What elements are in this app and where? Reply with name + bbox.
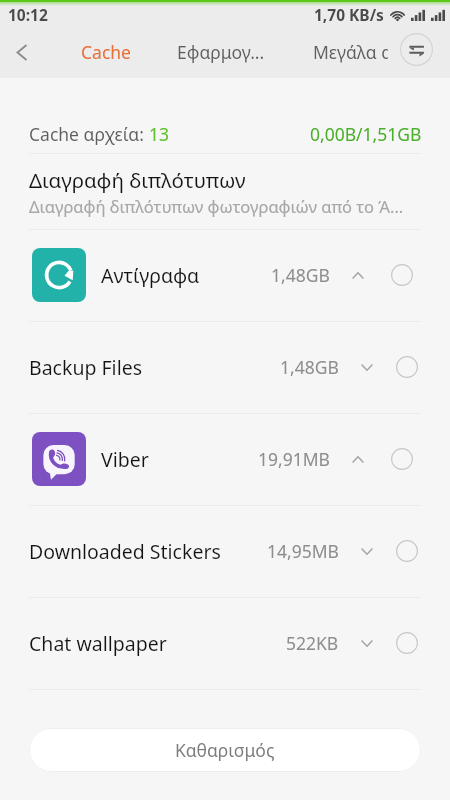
staticText: Μεγάλα αρχ: [313, 40, 388, 64]
staticText: 522KB: [286, 631, 339, 655]
button[interactable]: Backup Files: [0, 321, 450, 413]
staticText: Chat wallpaper: [29, 630, 167, 657]
staticText: Διαγραφή διπλότυπων: [29, 166, 246, 194]
staticText: 1,48GB: [271, 263, 330, 287]
button[interactable]: Εφαρμογ...: [177, 40, 265, 64]
staticText: Backup Files: [29, 354, 143, 381]
button[interactable]: Μεγάλα αρχ: [313, 40, 388, 64]
staticText: 14,95MB: [267, 539, 339, 563]
staticText: 0,00B/1,51GB: [310, 122, 422, 146]
button[interactable]: Διαγραφή διπλότυπων: [0, 154, 450, 229]
staticText: Αντίγραφα: [101, 262, 200, 289]
button[interactable]: Downloaded Stickers: [0, 505, 450, 597]
staticText: Viber: [101, 446, 149, 473]
button[interactable]: Select: [393, 353, 421, 381]
button[interactable]: Viber: [0, 413, 450, 505]
staticText: Εφαρμογ...: [177, 40, 265, 64]
staticText: 1,48GB: [280, 355, 339, 379]
staticText: 1,70 KB/s: [314, 4, 384, 25]
staticText: Downloaded Stickers: [29, 538, 221, 565]
button[interactable]: Sort: [399, 32, 434, 67]
staticText: 13: [149, 122, 170, 146]
staticText: Cache αρχεία:: [29, 122, 149, 146]
button[interactable]: Select: [388, 445, 416, 473]
button[interactable]: Αντίγραφα: [0, 229, 450, 321]
button[interactable]: Καθαρισμός: [29, 728, 421, 772]
button[interactable]: Select: [393, 537, 421, 565]
button[interactable]: Cache: [81, 40, 131, 64]
button[interactable]: Select: [393, 629, 421, 657]
staticText: Διαγραφή διπλότυπων φωτογραφιών από το Ά…: [29, 195, 404, 217]
staticText: Cache: [81, 40, 131, 64]
staticText: 10:12: [8, 4, 48, 25]
button[interactable]: Back: [0, 30, 44, 74]
staticText: 19,91MB: [258, 447, 330, 471]
staticText: Καθαρισμός: [175, 738, 275, 762]
button[interactable]: Chat wallpaper: [0, 597, 450, 689]
button[interactable]: Select: [388, 261, 416, 289]
